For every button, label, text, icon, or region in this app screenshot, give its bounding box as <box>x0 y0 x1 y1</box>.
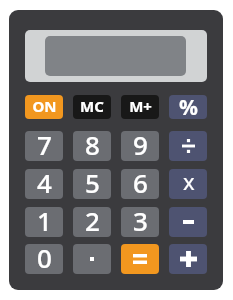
staticText: % <box>179 95 198 117</box>
button[interactable]: Multiply <box>169 169 207 199</box>
staticText: 9 <box>133 131 148 157</box>
button[interactable]: 0 <box>25 244 63 274</box>
staticText: 0 <box>37 244 52 270</box>
button[interactable]: MC <box>73 95 111 119</box>
button[interactable]: 7 <box>25 131 63 161</box>
staticText: 2 <box>85 207 100 233</box>
button[interactable]: 9 <box>121 131 159 161</box>
staticText: 6 <box>133 169 148 195</box>
button[interactable]: Minus <box>169 207 207 237</box>
button[interactable]: Plus <box>169 244 207 274</box>
staticText: 7 <box>37 131 52 157</box>
staticText: 1 <box>37 207 52 233</box>
button[interactable]: decimal point <box>73 244 111 274</box>
staticText: ON <box>32 96 57 116</box>
button[interactable]: 2 <box>73 207 111 237</box>
button[interactable]: ON <box>25 95 63 119</box>
button[interactable]: 6 <box>121 169 159 199</box>
button[interactable]: M+ <box>121 95 159 119</box>
button[interactable]: 8 <box>73 131 111 161</box>
button[interactable]: % <box>169 95 207 119</box>
staticText: 3 <box>133 207 148 233</box>
staticText: 4 <box>37 169 52 195</box>
button[interactable]: 5 <box>73 169 111 199</box>
staticText: 8 <box>85 131 100 157</box>
button[interactable]: Divide <box>169 131 207 161</box>
staticText: M+ <box>129 96 152 116</box>
button[interactable]: 1 <box>25 207 63 237</box>
staticText: 5 <box>85 169 100 195</box>
staticText: x <box>183 169 195 196</box>
button[interactable]: equals <box>121 244 159 274</box>
staticText: MC <box>80 96 104 116</box>
button[interactable]: 4 <box>25 169 63 199</box>
button[interactable]: 3 <box>121 207 159 237</box>
